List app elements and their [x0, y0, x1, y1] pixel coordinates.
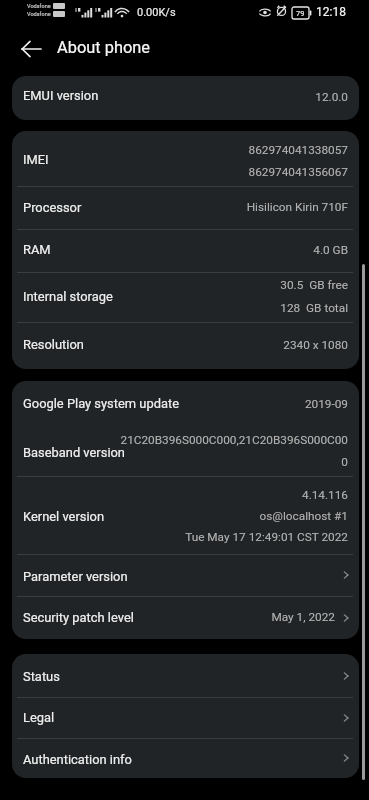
staticText: Vodafone: [27, 3, 51, 9]
staticText: Status: [23, 669, 60, 684]
staticText: Legal: [23, 710, 55, 725]
staticText: 4.14.116: [301, 488, 348, 502]
button[interactable]: Kernel version: [12, 476, 359, 554]
staticText: Processor: [23, 200, 82, 215]
button[interactable]: IMEI: [12, 131, 359, 186]
button[interactable]: RAM: [12, 229, 359, 272]
staticText: EMUI version: [23, 88, 99, 103]
staticText: IMEI: [23, 152, 49, 167]
staticText: Tue May 17 12:49:01 CST 2022: [185, 530, 348, 544]
staticText: Resolution: [23, 337, 84, 352]
staticText: 128 GB total: [280, 301, 348, 315]
staticText: Kernel version: [23, 509, 105, 524]
staticText: 0.00K/s: [137, 6, 176, 19]
button[interactable]: Processor: [12, 186, 359, 230]
staticText: 12.0.0: [315, 90, 348, 104]
button[interactable]: Google Play system update: [12, 381, 359, 427]
staticText: 12:18: [316, 5, 346, 19]
staticText: Google Play system update: [23, 396, 180, 411]
staticText: 2340 x 1080: [283, 338, 348, 352]
staticText: 21C20B396S000C000,21C20B396S000C00: [120, 433, 348, 447]
staticText: 2019-09: [304, 397, 348, 411]
staticText: 30.5 GB free: [280, 278, 348, 292]
staticText: Authentication info: [23, 752, 132, 767]
staticText: RAM: [23, 242, 51, 257]
button[interactable]: Parameter version: [12, 554, 359, 596]
staticText: Parameter version: [23, 569, 128, 584]
staticText: 862974041356067: [248, 165, 348, 179]
button[interactable]: Authentication info: [12, 738, 359, 778]
button[interactable]: Legal: [12, 697, 359, 738]
staticText: About phone: [57, 38, 151, 57]
staticText: May 1, 2022: [271, 610, 335, 624]
button[interactable]: EMUI version: [12, 76, 359, 120]
staticText: Hisilicon Kirin 710F: [246, 200, 348, 214]
staticText: Internal storage: [23, 289, 113, 304]
button[interactable]: Status: [12, 654, 359, 697]
staticText: 862974041338057: [248, 143, 348, 157]
staticText: 0: [341, 455, 348, 469]
staticText: Baseband version: [23, 445, 125, 460]
button[interactable]: Internal storage: [12, 272, 359, 322]
staticText: 4.0 GB: [313, 243, 348, 257]
button[interactable]: Back: [14, 32, 48, 66]
staticText: os@localhost #1: [259, 509, 348, 523]
button[interactable]: Security patch level: [12, 596, 359, 639]
button[interactable]: Baseband version: [12, 427, 359, 476]
button[interactable]: Resolution: [12, 322, 359, 369]
staticText: 79: [296, 9, 305, 18]
staticText: Vodafone: [27, 11, 51, 17]
staticText: Security patch level: [23, 610, 134, 625]
